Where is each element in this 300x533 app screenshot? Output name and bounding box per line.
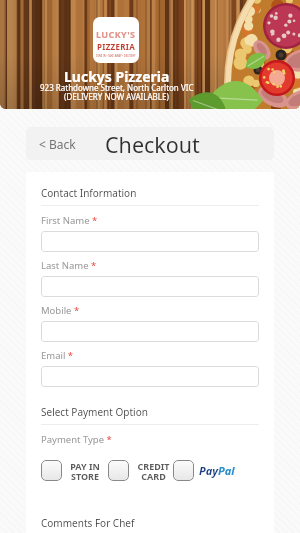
staticText: Email * [41, 349, 74, 362]
staticText: Payment Type * [41, 433, 112, 446]
staticText: PIZZERIA [97, 41, 136, 52]
staticText: (DELIVERY NOW AVAILABLE) [64, 91, 169, 102]
staticText: Luckys Pizzeria [64, 67, 170, 86]
staticText: Contact Information [41, 186, 137, 200]
button[interactable]: Last Name [41, 276, 259, 297]
staticText: PayPal [199, 463, 235, 478]
button[interactable]: First Name [41, 231, 259, 252]
staticText: Select Payment Option [41, 405, 148, 419]
button[interactable]: < Back [26, 127, 88, 160]
staticText: Checkout [105, 130, 200, 159]
staticText: Last Name * [41, 259, 97, 272]
button[interactable]: PayPal [173, 460, 238, 481]
staticText: Mobile * [41, 304, 80, 317]
staticText: First Name * [41, 214, 98, 227]
button[interactable]: Credit card [108, 460, 170, 481]
staticText: CREDIT CARD [137, 460, 170, 481]
staticText: Comments For Chef [41, 516, 135, 530]
button[interactable]: Mobile [41, 321, 259, 342]
button[interactable]: Pay in store [41, 460, 100, 481]
staticText: DINE IN • TAKE AWAY • DELIVERY [96, 54, 136, 58]
staticText: < Back [39, 136, 76, 152]
button[interactable]: Email [41, 366, 259, 387]
staticText: PAY IN STORE [70, 460, 100, 481]
staticText: LUCKY'S [96, 28, 136, 40]
staticText: 923 Rathdowne Street, North Carlton VIC [40, 82, 194, 93]
